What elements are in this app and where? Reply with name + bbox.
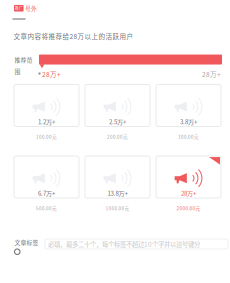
staticText: 2.5万+	[109, 117, 126, 126]
staticText: 号外	[25, 4, 37, 12]
staticText: 300.00元	[178, 133, 199, 140]
staticText: 文章内容将推荐给28万以上的活跃用户	[13, 31, 133, 41]
button[interactable]: 3.8万+	[156, 84, 221, 140]
staticText: 500.00元	[36, 205, 57, 212]
staticText: 2000.00元	[176, 205, 200, 212]
staticText: 必填，最多二十个，每个标签不超过10个字并以逗号键分	[48, 239, 200, 249]
staticText: 3.8万+	[180, 117, 197, 126]
staticText: 28万+	[42, 69, 61, 79]
staticText: 1000.00元	[105, 205, 129, 212]
staticText: 文章标签	[14, 238, 38, 246]
staticText: 1.2万+	[38, 117, 55, 126]
staticText: 6.7万+	[38, 189, 55, 197]
button[interactable]: 1.2万+	[14, 84, 79, 140]
staticText: 13.8万+	[107, 189, 127, 197]
button[interactable]: 6.7万+	[14, 156, 79, 212]
staticText: 推广	[15, 5, 23, 11]
staticText: 28万+	[181, 189, 196, 197]
staticText: 围	[14, 67, 20, 75]
button[interactable]: 13.8万+	[85, 156, 150, 212]
button[interactable]: 2.5万+	[85, 84, 150, 140]
staticText: 100.00元	[36, 133, 57, 140]
staticText: 推荐范	[14, 55, 32, 64]
button[interactable]: 必填，最多二十个，每个标签不超过10个字并以逗号键分	[45, 239, 228, 249]
staticText: 28万+	[202, 69, 221, 79]
staticText: 200.00元	[107, 133, 128, 140]
button[interactable]: 28万+	[156, 156, 221, 212]
